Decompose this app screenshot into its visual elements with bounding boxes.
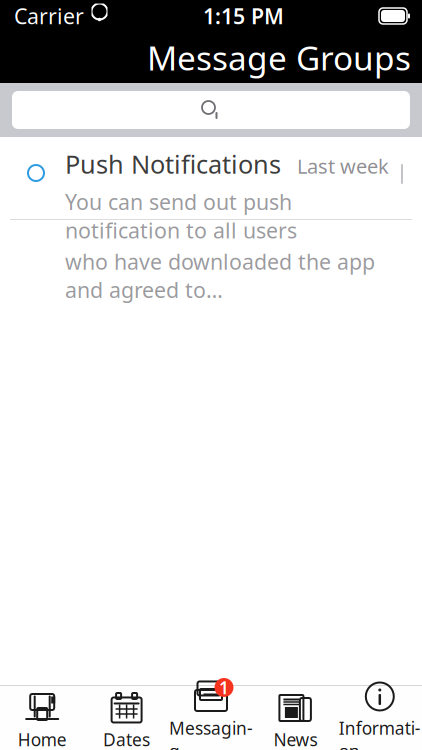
button[interactable]: Information	[338, 686, 422, 750]
button[interactable]: Push Notifications	[0, 137, 422, 220]
button[interactable]: News	[253, 686, 338, 750]
staticText: Messaging	[169, 716, 253, 750]
staticText: 1:15 PM	[203, 2, 284, 30]
staticText: Carrier	[14, 2, 84, 30]
staticText: News	[273, 728, 317, 750]
staticText: Information	[339, 716, 421, 750]
staticText: who have downloaded the app and agreed t…	[65, 247, 375, 304]
staticText: Dates	[103, 728, 150, 750]
button[interactable]: Home	[0, 686, 84, 750]
staticText: You can send out push notification to al…	[65, 188, 297, 244]
staticText: 1	[219, 676, 229, 699]
staticText: Message Groups	[147, 35, 411, 80]
staticText: Push Notifications	[65, 147, 281, 181]
button[interactable]: Search	[0, 83, 422, 137]
button[interactable]: Dates	[84, 686, 169, 750]
staticText: Last week	[297, 153, 389, 179]
staticText: Home	[18, 728, 67, 750]
button[interactable]: 1	[169, 686, 253, 750]
